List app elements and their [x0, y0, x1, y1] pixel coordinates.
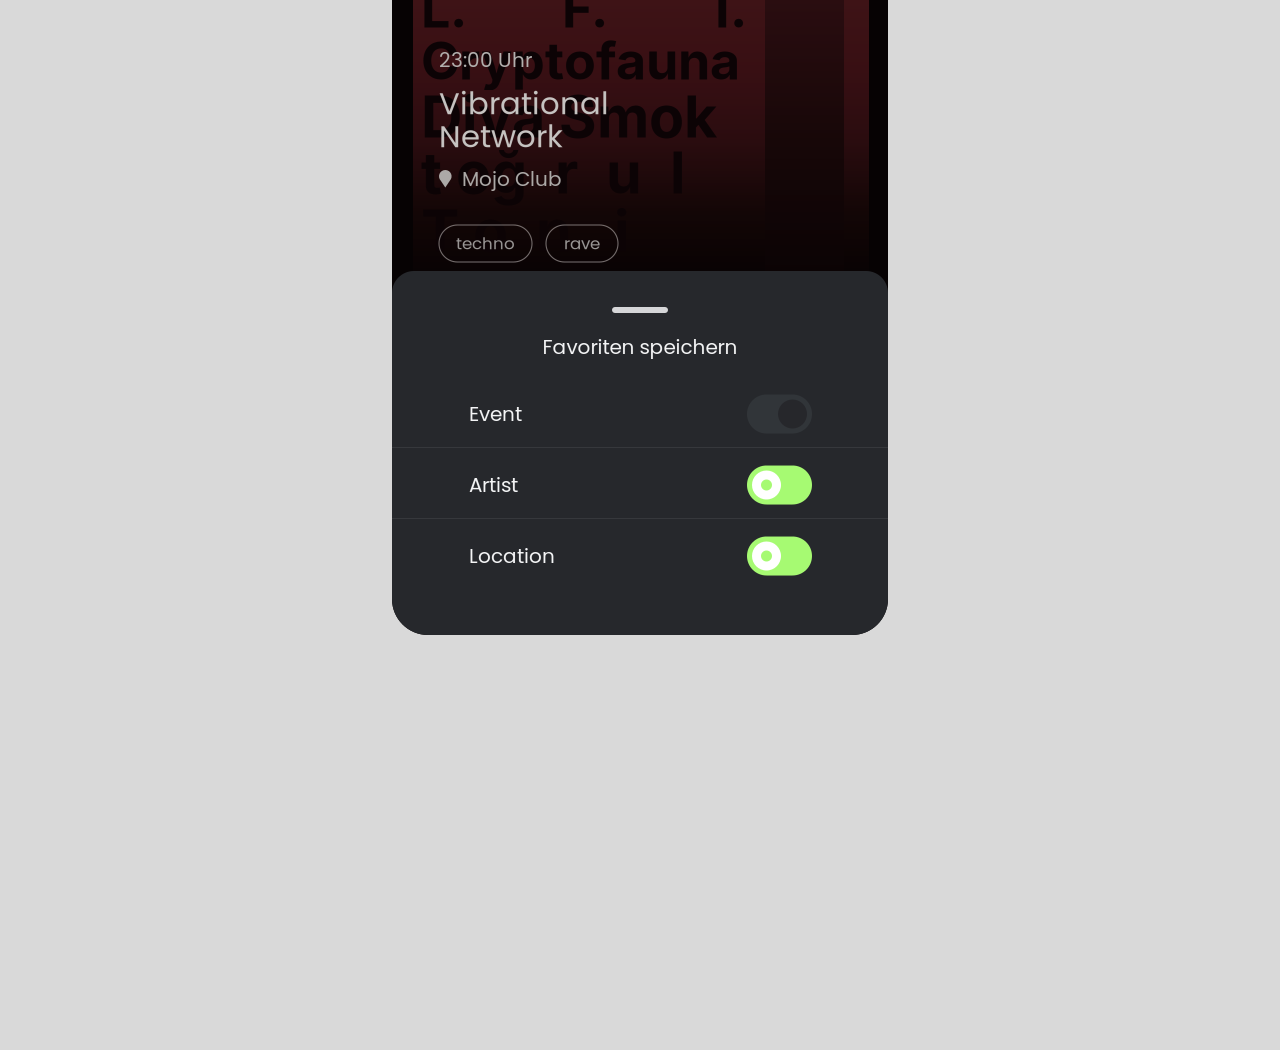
button[interactable]: Event	[392, 377, 888, 447]
staticText: Event	[469, 400, 522, 428]
staticText: t oğ r u l	[421, 138, 686, 207]
staticText: Favoriten speichern	[542, 333, 737, 361]
staticText: Mojo Club	[462, 165, 562, 193]
staticText: T o n i	[421, 196, 630, 265]
staticText: Cryptofauna	[421, 29, 740, 92]
staticText: rave	[564, 232, 600, 255]
staticText: 23:00 Uhr	[439, 46, 532, 74]
staticText: Artist	[469, 471, 518, 499]
staticText: Diva Smok	[421, 82, 717, 151]
button[interactable]: techno	[439, 225, 532, 262]
staticText: Vibrational	[439, 82, 609, 125]
staticText: techno	[456, 232, 515, 255]
staticText: L. F. I.	[421, 0, 747, 40]
button[interactable]: rave	[546, 225, 618, 262]
staticText: Location	[469, 542, 555, 570]
button[interactable]: Location	[392, 519, 888, 589]
staticText: Network	[439, 115, 563, 158]
button[interactable]: Artist	[392, 448, 888, 518]
